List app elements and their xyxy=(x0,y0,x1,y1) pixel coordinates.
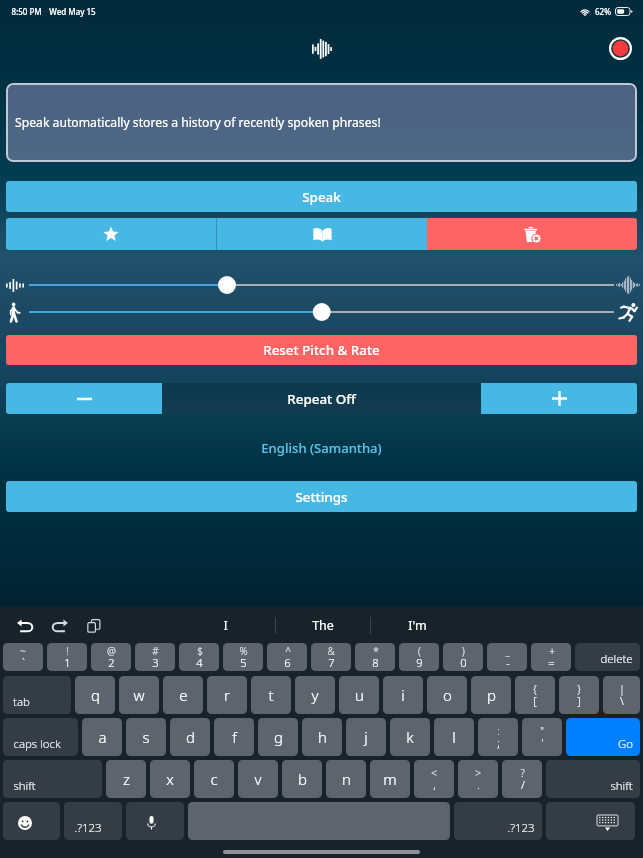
button[interactable]: Pitch xyxy=(29,275,614,295)
button[interactable]: emoji xyxy=(3,802,60,840)
button[interactable]: tab xyxy=(3,676,71,714)
staticText: 5 xyxy=(240,655,247,669)
button[interactable]: h xyxy=(302,718,342,756)
staticText: 6 xyxy=(284,655,291,669)
button[interactable]: " xyxy=(522,718,562,756)
button[interactable]: n xyxy=(326,760,366,798)
button[interactable]: : xyxy=(478,718,518,756)
button[interactable]: > xyxy=(458,760,498,798)
button[interactable]: Undo xyxy=(12,612,39,639)
button[interactable]: Increase repeat xyxy=(481,383,637,414)
button[interactable]: x xyxy=(150,760,190,798)
button[interactable]: Redo xyxy=(46,612,73,639)
button[interactable]: ~ xyxy=(3,643,43,671)
button[interactable]: | xyxy=(603,676,640,714)
staticText: | xyxy=(619,682,625,696)
staticText: 4 xyxy=(196,655,203,669)
button[interactable]: @ xyxy=(91,643,131,671)
button[interactable]: k xyxy=(390,718,430,756)
staticText: + xyxy=(549,644,555,658)
button[interactable]: Decrease repeat xyxy=(6,383,162,414)
button[interactable]: delete xyxy=(575,643,640,671)
staticText: Reset Pitch & Rate xyxy=(263,341,380,359)
button[interactable]: j xyxy=(346,718,386,756)
button[interactable]: * xyxy=(355,643,395,671)
button[interactable]: q xyxy=(75,676,115,714)
staticText: , xyxy=(433,777,436,792)
staticText: - xyxy=(506,655,510,669)
button[interactable]: Clear history xyxy=(427,218,637,250)
button[interactable]: i xyxy=(383,676,423,714)
button[interactable]: I'm xyxy=(371,608,464,643)
button[interactable]: Settings xyxy=(6,481,637,512)
staticText: ( xyxy=(418,644,421,658)
button[interactable]: I xyxy=(179,608,272,643)
staticText: ; xyxy=(497,735,500,750)
staticText: Settings xyxy=(295,488,348,506)
button[interactable]: g xyxy=(258,718,298,756)
button[interactable]: s xyxy=(126,718,166,756)
button[interactable]: Audio waveform xyxy=(305,32,339,66)
button[interactable]: y xyxy=(295,676,335,714)
button[interactable]: kbd xyxy=(546,802,635,840)
button[interactable]: # xyxy=(135,643,175,671)
button[interactable]: Speak xyxy=(6,181,637,212)
button[interactable]: shift xyxy=(546,760,640,798)
button[interactable]: Repeat Off xyxy=(162,383,481,414)
button[interactable]: { xyxy=(515,676,555,714)
button[interactable]: p xyxy=(471,676,511,714)
button[interactable]: } xyxy=(559,676,599,714)
button[interactable]: .?123 xyxy=(454,802,542,840)
button[interactable]: English (Samantha) xyxy=(0,437,643,459)
staticText: q xyxy=(91,685,100,705)
staticText: k xyxy=(406,727,414,747)
button[interactable]: + xyxy=(531,643,571,671)
staticText: b xyxy=(298,769,307,789)
button[interactable]: & xyxy=(311,643,351,671)
button[interactable]: r xyxy=(207,676,247,714)
button[interactable]: a xyxy=(82,718,122,756)
button[interactable]: _ xyxy=(487,643,527,671)
staticText: 8:50 PM xyxy=(11,6,42,17)
button[interactable]: ? xyxy=(502,760,542,798)
button[interactable]: caps lock xyxy=(3,718,78,756)
button[interactable]: t xyxy=(251,676,291,714)
button[interactable]: e xyxy=(163,676,203,714)
button[interactable]: $ xyxy=(179,643,219,671)
button[interactable]: ) xyxy=(443,643,483,671)
button[interactable]: ( xyxy=(399,643,439,671)
staticText: u xyxy=(355,685,364,705)
button[interactable]: .?123 xyxy=(64,802,122,840)
button[interactable]: z xyxy=(106,760,146,798)
button[interactable]: Go xyxy=(566,718,640,756)
button[interactable]: ^ xyxy=(267,643,307,671)
button[interactable]: u xyxy=(339,676,379,714)
button[interactable]: w xyxy=(119,676,159,714)
button[interactable]: < xyxy=(414,760,454,798)
button[interactable]: Speak automatically stores a history of … xyxy=(6,83,637,162)
button[interactable]: Rate xyxy=(29,302,614,322)
button[interactable]: Favorites xyxy=(6,218,216,250)
button[interactable]: The xyxy=(276,608,370,643)
button[interactable]: b xyxy=(282,760,322,798)
button[interactable]: Paste xyxy=(80,612,107,639)
button[interactable]: % xyxy=(223,643,263,671)
button[interactable]: m xyxy=(370,760,410,798)
button[interactable]: l xyxy=(434,718,474,756)
button[interactable]: ! xyxy=(47,643,87,671)
staticText: = xyxy=(548,655,555,669)
button[interactable]: mic xyxy=(126,802,184,840)
button[interactable]: f xyxy=(214,718,254,756)
button[interactable]: Reset Pitch & Rate xyxy=(6,335,637,365)
staticText: @ xyxy=(107,644,116,658)
button[interactable]: v xyxy=(238,760,278,798)
button[interactable]: History xyxy=(217,218,427,250)
staticText: ^ xyxy=(285,644,291,658)
button[interactable]: o xyxy=(427,676,467,714)
button[interactable]: Record xyxy=(607,35,633,61)
button[interactable]: d xyxy=(170,718,210,756)
button[interactable]: shift xyxy=(3,760,102,798)
staticText: } xyxy=(577,682,581,696)
button[interactable]: c xyxy=(194,760,234,798)
